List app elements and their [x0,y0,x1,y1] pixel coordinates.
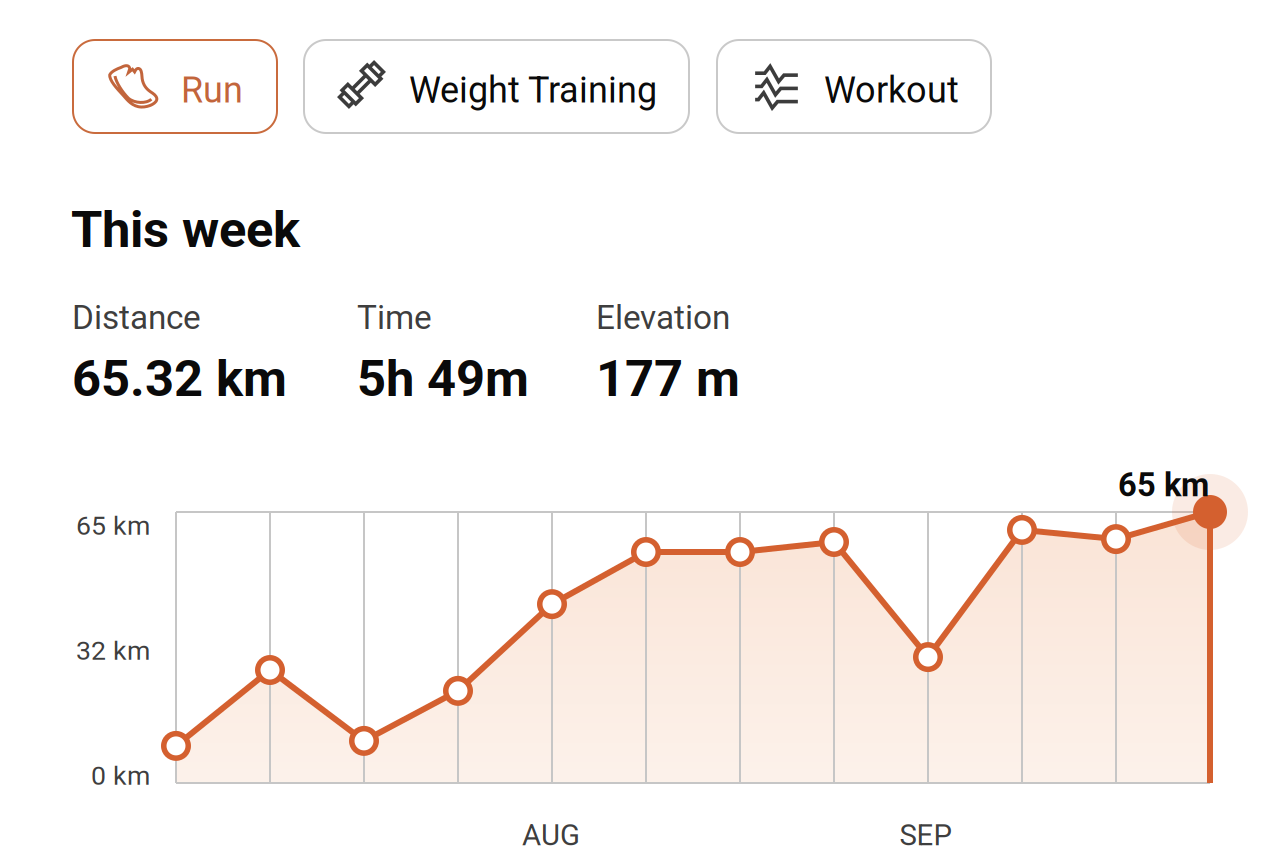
staticText: Workout [824,69,959,111]
staticText: Run [181,69,243,111]
staticText: 177 m [596,349,740,408]
staticText: Time [357,298,432,337]
staticText: 5h 49m [357,349,529,408]
staticText: 0 km [91,760,150,791]
button[interactable]: Weight Training [304,40,689,133]
staticText: 32 km [76,635,150,666]
button[interactable]: Workout [717,40,991,133]
staticText: Weight Training [409,69,657,111]
staticText: SEP [899,818,952,852]
staticText: 65.32 km [72,349,287,408]
staticText: AUG [522,818,580,852]
staticText: 65 km [76,510,150,541]
staticText: This week [71,200,300,259]
staticText: 65 km [1118,466,1209,504]
button[interactable]: Run [73,40,277,133]
staticText: Elevation [596,298,730,337]
staticText: Distance [72,298,201,337]
